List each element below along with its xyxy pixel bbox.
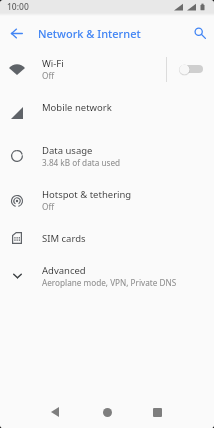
button[interactable]: Navigate up	[3, 20, 29, 46]
staticText: Aeroplane mode, VPN, Private DNS	[42, 277, 177, 288]
staticText: 3.84 kB of data used	[42, 157, 121, 168]
staticText: Network & Internet	[38, 26, 141, 41]
staticText: Hotspot & tethering	[42, 188, 132, 201]
button[interactable]: Wi-Fi	[0, 50, 214, 87]
staticText: Off	[42, 70, 55, 81]
button[interactable]: Hotspot & tethering	[0, 181, 214, 218]
staticText: Advanced	[42, 264, 86, 277]
staticText: Wi-Fi	[42, 57, 64, 70]
button[interactable]: Search	[187, 20, 213, 46]
button[interactable]: SIM cards	[0, 221, 214, 255]
button[interactable]: Back	[44, 401, 66, 423]
button[interactable]: Mobile network	[0, 90, 214, 124]
staticText: 10:00	[7, 1, 29, 13]
staticText: Mobile network	[42, 101, 112, 114]
staticText: Data usage	[42, 144, 93, 157]
staticText: SIM cards	[42, 232, 86, 245]
button[interactable]: Wi-Fi toggle	[178, 61, 203, 77]
button[interactable]: Recent apps	[146, 401, 168, 423]
button[interactable]: Data usage	[0, 137, 214, 174]
button[interactable]: Home	[96, 401, 118, 423]
staticText: Off	[42, 201, 55, 212]
button[interactable]: Advanced	[0, 257, 214, 294]
